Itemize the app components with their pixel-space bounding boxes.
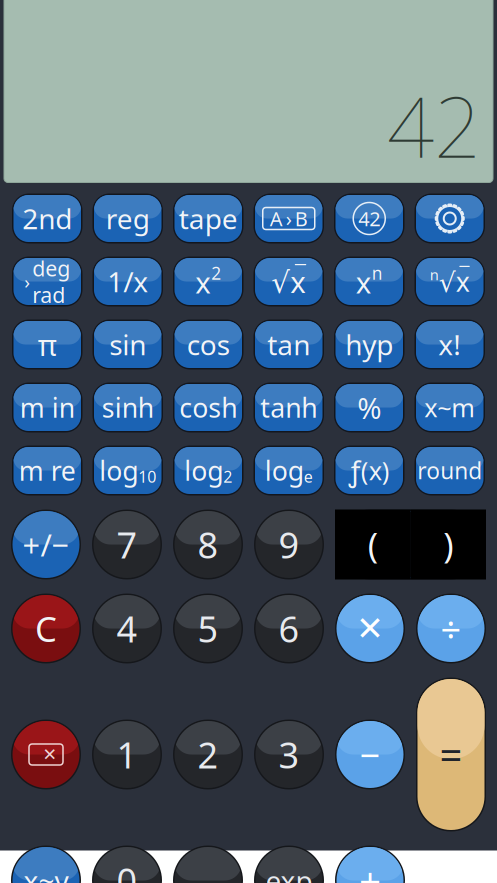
- button[interactable]: sinh: [92, 382, 163, 432]
- staticText: 42: [387, 71, 481, 180]
- button[interactable]: .: [173, 845, 243, 883]
- button[interactable]: 8: [173, 509, 243, 579]
- button[interactable]: x~m: [414, 382, 485, 432]
- staticText: exp: [265, 862, 312, 883]
- staticText: +: [359, 855, 381, 883]
- staticText: sinh: [102, 390, 154, 425]
- button[interactable]: log base 10: [92, 445, 163, 495]
- button[interactable]: cos: [173, 319, 243, 369]
- staticText: ÷: [440, 605, 461, 652]
- button[interactable]: Clear: [11, 593, 81, 663]
- button[interactable]: f of x: [334, 445, 404, 495]
- button[interactable]: ✕: [335, 593, 405, 663]
- staticText: ): [443, 521, 453, 567]
- button[interactable]: x squared: [173, 256, 243, 306]
- button[interactable]: hyp: [334, 319, 404, 369]
- button[interactable]: deg rad: [12, 256, 82, 306]
- button[interactable]: cosh: [173, 382, 243, 432]
- staticText: 5: [197, 605, 218, 652]
- staticText: ✕: [42, 745, 57, 764]
- button[interactable]: open parenthesis: [335, 509, 410, 579]
- button[interactable]: x swap y: [11, 845, 81, 883]
- button[interactable]: tape: [173, 193, 243, 243]
- staticText: e: [304, 466, 313, 487]
- staticText: reg: [106, 200, 150, 237]
- staticText: 1: [116, 731, 137, 778]
- button[interactable]: reg: [92, 193, 163, 243]
- staticText: 2: [223, 466, 232, 487]
- staticText: log: [99, 453, 138, 488]
- staticText: π: [38, 325, 57, 364]
- staticText: =: [439, 728, 462, 781]
- button[interactable]: 42: [334, 193, 404, 243]
- staticText: A: [270, 205, 283, 232]
- button[interactable]: plus minus: [11, 509, 81, 579]
- staticText: m re: [19, 453, 76, 488]
- staticText: n: [372, 261, 383, 284]
- button[interactable]: round: [414, 445, 485, 495]
- staticText: m in: [20, 390, 75, 425]
- button[interactable]: %: [334, 382, 404, 432]
- staticText: √x: [439, 264, 470, 299]
- button[interactable]: close parenthesis: [410, 509, 486, 579]
- staticText: 7: [116, 521, 137, 568]
- button[interactable]: log base 2: [173, 445, 243, 495]
- staticText: (: [368, 521, 378, 567]
- staticText: 3: [278, 731, 299, 778]
- staticText: B: [295, 205, 308, 232]
- staticText: x~y: [23, 862, 68, 883]
- button[interactable]: exp: [254, 845, 324, 883]
- staticText: n: [430, 265, 439, 284]
- staticText: 2: [211, 261, 221, 284]
- button[interactable]: 5: [173, 593, 243, 663]
- button[interactable]: 3: [254, 719, 324, 789]
- button[interactable]: 6: [254, 593, 324, 663]
- button[interactable]: ÷: [416, 593, 486, 663]
- staticText: 42: [358, 205, 380, 232]
- button[interactable]: m in: [12, 382, 82, 432]
- button[interactable]: Settings: [414, 193, 485, 243]
- staticText: 1/x: [107, 263, 148, 300]
- button[interactable]: log base e: [253, 445, 324, 495]
- button[interactable]: x!: [414, 319, 485, 369]
- staticText: 9: [278, 521, 299, 568]
- button[interactable]: 1: [92, 719, 162, 789]
- button[interactable]: −: [335, 719, 405, 789]
- button[interactable]: 2: [173, 719, 243, 789]
- button[interactable]: 1/x: [92, 256, 163, 306]
- button[interactable]: nth root: [414, 256, 485, 306]
- staticText: 6: [278, 605, 299, 652]
- staticText: ✕: [356, 610, 384, 647]
- staticText: log: [184, 453, 223, 488]
- staticText: deg: [32, 254, 70, 282]
- staticText: √x: [271, 262, 306, 301]
- button[interactable]: 0: [92, 845, 162, 883]
- button[interactable]: m re: [12, 445, 82, 495]
- button[interactable]: tan: [253, 319, 324, 369]
- staticText: x: [356, 262, 372, 301]
- button[interactable]: A to B: [253, 193, 324, 243]
- button[interactable]: Backspace: [11, 719, 81, 789]
- staticText: ›: [286, 205, 292, 232]
- staticText: 4: [116, 605, 137, 652]
- button[interactable]: 4: [92, 593, 162, 663]
- staticText: cos: [187, 326, 230, 363]
- staticText: round: [417, 455, 482, 485]
- button[interactable]: x to the n: [334, 256, 404, 306]
- button[interactable]: π: [12, 319, 82, 369]
- button[interactable]: 2nd: [12, 193, 82, 243]
- staticText: tanh: [260, 390, 317, 425]
- button[interactable]: sin: [92, 319, 163, 369]
- staticText: tan: [267, 326, 310, 363]
- staticText: tape: [179, 200, 238, 237]
- button[interactable]: tanh: [253, 382, 324, 432]
- button[interactable]: square root: [253, 256, 324, 306]
- button[interactable]: +: [335, 845, 405, 883]
- staticText: ƒ: [349, 452, 361, 489]
- staticText: −: [359, 731, 380, 778]
- staticText: rad: [32, 280, 65, 309]
- button[interactable]: equals: [416, 677, 486, 831]
- staticText: C: [35, 605, 57, 651]
- button[interactable]: 9: [254, 509, 324, 579]
- button[interactable]: 7: [92, 509, 162, 579]
